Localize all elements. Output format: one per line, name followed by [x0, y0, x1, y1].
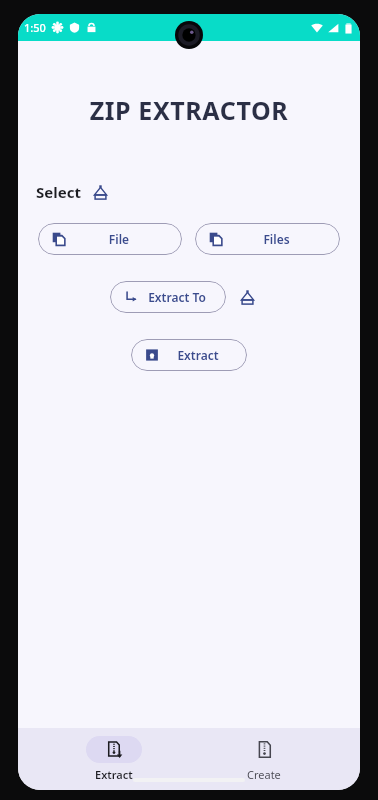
staticText: Extract To [138, 289, 216, 305]
staticText: 1:50 [24, 20, 46, 35]
staticText: ZIP EXTRACTOR [18, 93, 360, 127]
staticText: Extract [95, 767, 133, 782]
button[interactable]: File [38, 223, 182, 255]
staticText: Select [36, 182, 81, 202]
button[interactable]: Extract To [110, 281, 226, 313]
button[interactable]: Create [209, 732, 319, 786]
button[interactable]: Files [195, 223, 340, 255]
button[interactable]: Extract [131, 339, 247, 371]
staticText: Extract [159, 347, 237, 363]
staticText: Create [247, 767, 281, 782]
staticText: File [66, 231, 172, 247]
button[interactable]: Extract [59, 732, 169, 786]
staticText: Files [223, 231, 330, 247]
